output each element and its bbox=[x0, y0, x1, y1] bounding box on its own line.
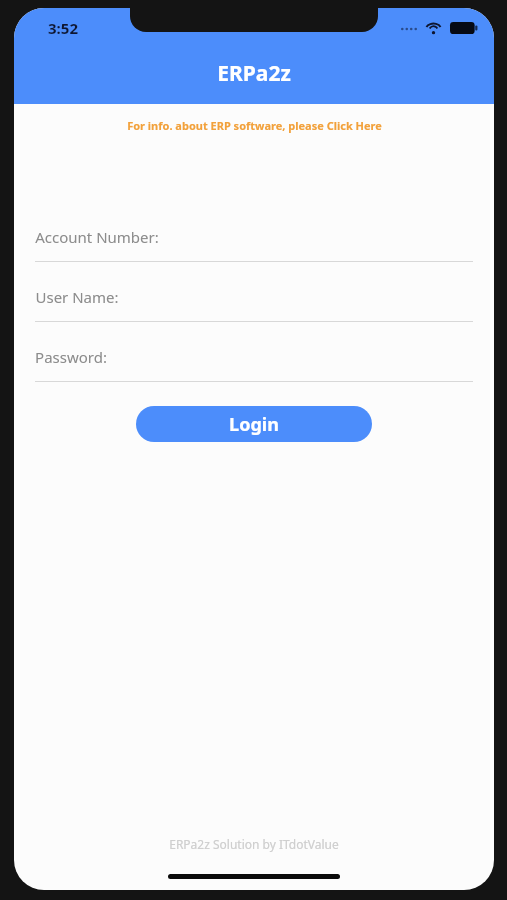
staticText: Account Number: bbox=[35, 227, 159, 247]
staticText: ERPa2z Solution by ITdotValue bbox=[169, 836, 339, 852]
staticText: Login bbox=[229, 412, 279, 437]
staticText: 3:52 bbox=[48, 18, 78, 38]
staticText: ERPa2z bbox=[217, 59, 291, 88]
staticText: User Name: bbox=[35, 287, 119, 307]
button[interactable]: Account Number: bbox=[35, 227, 473, 262]
button[interactable]: Login bbox=[136, 406, 372, 442]
button[interactable]: For info. about ERP software, please Cli… bbox=[14, 118, 494, 133]
button[interactable]: User Name: bbox=[35, 287, 473, 322]
staticText: For info. about ERP software, please Cli… bbox=[127, 118, 382, 133]
staticText: Password: bbox=[35, 347, 107, 367]
button[interactable]: Password: bbox=[35, 347, 473, 382]
